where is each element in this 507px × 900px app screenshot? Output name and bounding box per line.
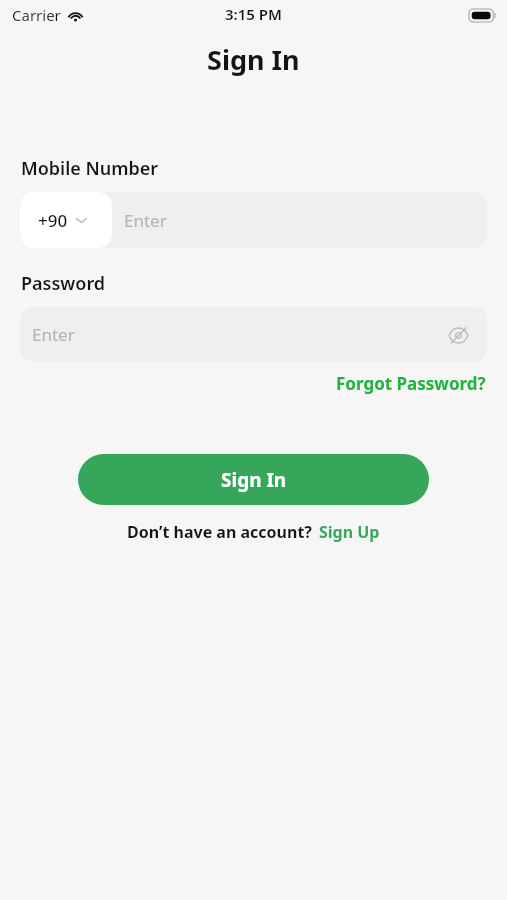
button[interactable]: +90 [20,192,112,248]
staticText: Sign In [207,41,300,78]
staticText: Carrier [12,5,61,25]
staticText: Forgot Password? [336,372,486,395]
staticText: Password [21,271,106,296]
staticText: Mobile Number [21,156,159,181]
button[interactable]: Sign Up [318,518,381,546]
button[interactable]: Forgot Password? [334,369,488,398]
staticText: Sign In [221,467,287,493]
staticText: +90 [38,209,68,232]
staticText: Don’t have an account? [127,521,312,543]
staticText: Enter [124,209,167,232]
staticText: 3:15 PM [225,4,282,24]
staticText: Sign Up [319,521,380,543]
staticText: Enter [32,323,75,346]
button[interactable]: Show password [441,318,475,352]
button[interactable]: Sign In [78,454,429,505]
